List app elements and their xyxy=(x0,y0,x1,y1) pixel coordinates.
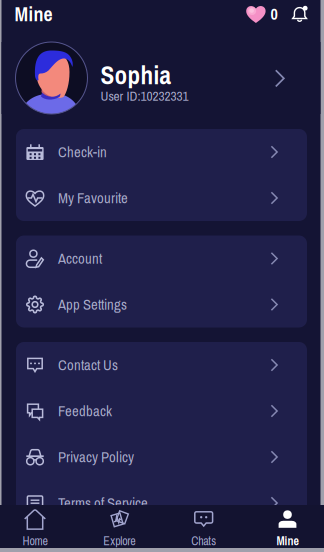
button[interactable]: Check-in xyxy=(16,129,307,175)
staticText: Mine xyxy=(276,533,298,549)
staticText: Sophia xyxy=(100,58,171,92)
button[interactable]: Notifications xyxy=(277,5,308,22)
button[interactable]: Likes xyxy=(245,3,277,25)
button[interactable]: Terms of Service xyxy=(16,480,307,526)
staticText: Contact Us xyxy=(58,355,118,375)
staticText: Privacy Policy xyxy=(58,447,134,467)
button[interactable]: App Settings xyxy=(16,281,307,327)
staticText: My Favourite xyxy=(58,188,128,208)
staticText: User ID:10232331 xyxy=(100,87,188,105)
staticText: 0 xyxy=(270,3,277,25)
staticText: Terms of Service xyxy=(58,493,148,513)
button[interactable]: Feedback xyxy=(16,388,307,434)
button[interactable]: Mine xyxy=(248,505,324,548)
button[interactable]: Account xyxy=(16,235,307,281)
button[interactable]: My Favourite xyxy=(16,175,307,221)
button[interactable]: Home xyxy=(0,505,74,548)
staticText: Chats xyxy=(191,533,216,549)
button[interactable]: Sophia xyxy=(1,42,320,114)
button[interactable]: Explore xyxy=(80,505,158,548)
staticText: Account xyxy=(58,249,102,268)
staticText: Home xyxy=(22,533,47,549)
staticText: Check-in xyxy=(58,142,107,162)
staticText: App Settings xyxy=(58,295,127,314)
button[interactable]: Privacy Policy xyxy=(16,434,307,480)
staticText: Mine xyxy=(14,0,52,27)
button[interactable]: Contact Us xyxy=(16,342,307,388)
staticText: Feedback xyxy=(58,401,112,421)
button[interactable]: Chats xyxy=(165,505,243,548)
staticText: Explore xyxy=(103,533,135,549)
